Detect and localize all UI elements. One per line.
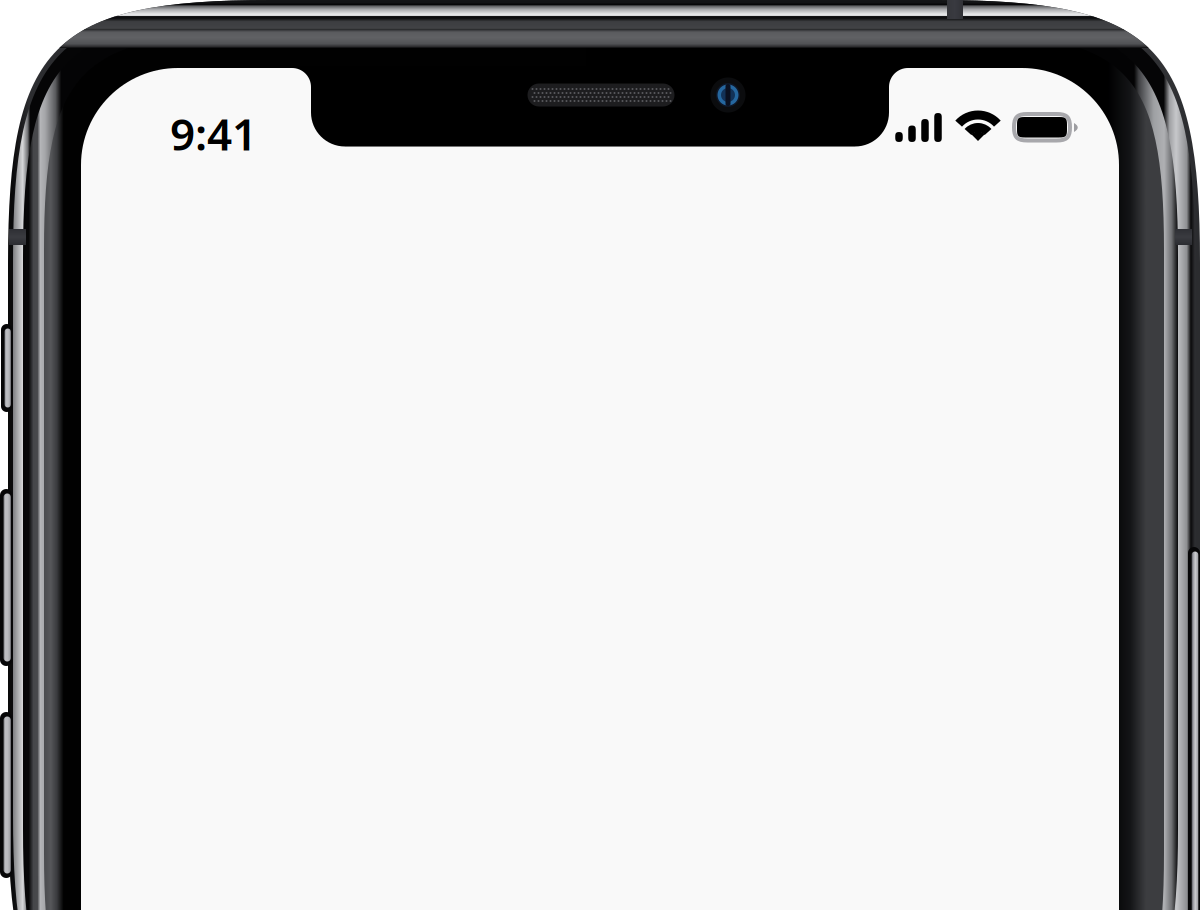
staticText: 9:41 (170, 104, 257, 163)
